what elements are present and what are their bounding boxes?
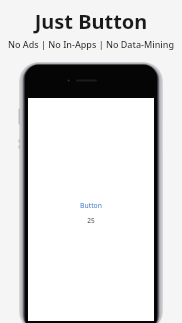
staticText: Just Button [0, 8, 182, 35]
staticText: No Ads | No In-Apps | No Data-Mining [0, 38, 182, 50]
staticText: 25 [28, 216, 154, 225]
staticText: Button [28, 201, 154, 210]
button[interactable]: Button [28, 201, 154, 210]
